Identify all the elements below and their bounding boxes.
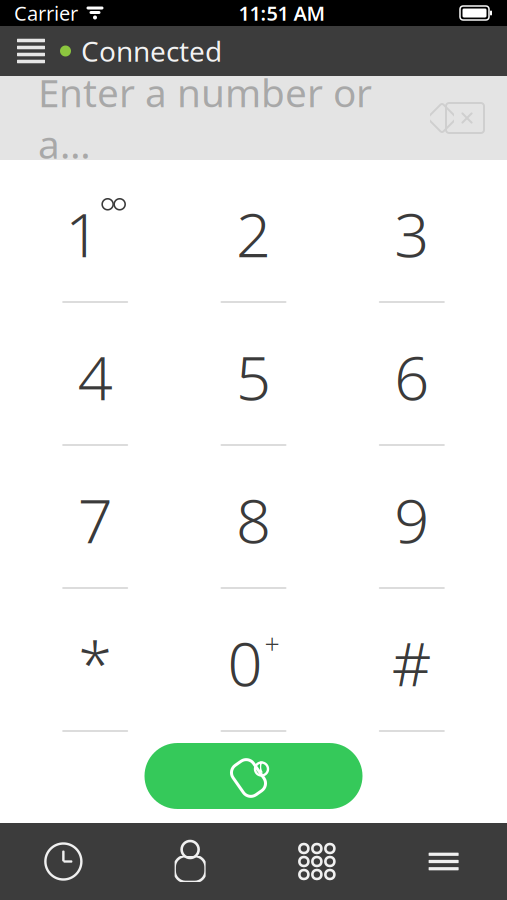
button[interactable]: * bbox=[16, 595, 174, 738]
staticText: 6 bbox=[394, 336, 429, 417]
button[interactable]: 2 bbox=[174, 166, 333, 309]
staticText: 8 bbox=[236, 479, 271, 560]
staticText: 4 bbox=[78, 336, 113, 417]
button[interactable]: Recents bbox=[0, 823, 127, 900]
button[interactable]: 8 bbox=[174, 452, 333, 595]
button[interactable]: More bbox=[380, 823, 507, 900]
button[interactable]: 1 bbox=[16, 166, 174, 309]
button[interactable]: 5 bbox=[174, 309, 333, 452]
staticText: * bbox=[78, 622, 112, 703]
button[interactable]: 3 bbox=[333, 166, 491, 309]
button[interactable]: Keypad bbox=[253, 823, 380, 900]
button[interactable]: Connected bbox=[54, 26, 228, 76]
button[interactable]: # bbox=[333, 595, 491, 738]
staticText: 3 bbox=[394, 193, 429, 274]
button[interactable]: 7 bbox=[16, 452, 174, 595]
staticText: 11:51 AM bbox=[238, 0, 325, 26]
button[interactable]: Call bbox=[144, 743, 362, 809]
button[interactable]: Delete bbox=[423, 101, 485, 135]
staticText: 5 bbox=[236, 336, 271, 417]
button[interactable]: Menu bbox=[8, 26, 54, 76]
button[interactable]: 0 bbox=[174, 595, 333, 738]
button[interactable]: 9 bbox=[333, 452, 491, 595]
staticText: 0 bbox=[227, 622, 262, 703]
staticText: 7 bbox=[78, 479, 113, 560]
button[interactable]: Contacts bbox=[127, 823, 254, 900]
staticText: + bbox=[264, 626, 279, 661]
staticText: 2 bbox=[236, 193, 271, 274]
staticText: 9 bbox=[394, 479, 429, 560]
button[interactable]: 6 bbox=[333, 309, 491, 452]
staticText: Carrier bbox=[14, 0, 78, 26]
staticText: Enter a number or a… bbox=[38, 67, 372, 169]
button[interactable]: 4 bbox=[16, 309, 174, 452]
staticText: Connected bbox=[81, 32, 222, 70]
staticText: 1 bbox=[65, 193, 100, 274]
staticText: # bbox=[392, 622, 432, 703]
